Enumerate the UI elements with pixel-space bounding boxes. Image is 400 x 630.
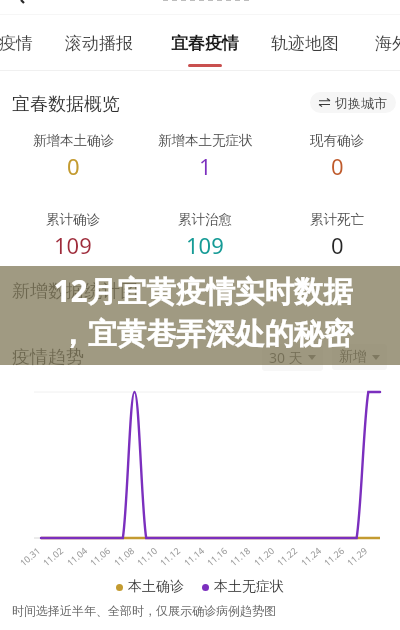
staticText: 11.29 <box>344 544 370 568</box>
staticText: 宜春疫情 <box>171 33 239 54</box>
staticText: 新增数据统计图 <box>12 280 138 303</box>
button[interactable]: 轨迹地图 <box>263 33 347 54</box>
staticText: 切换城市 <box>335 95 387 111</box>
staticText: 0 <box>331 151 344 181</box>
staticText: 109 <box>54 230 92 260</box>
button[interactable]: 现有确诊 <box>277 132 397 181</box>
button[interactable]: 宜春疫情 <box>163 33 247 67</box>
staticText: 11.22 <box>274 544 300 568</box>
button[interactable]: 新增本土无症状 <box>145 132 265 181</box>
staticText: 11.04 <box>64 544 90 568</box>
button[interactable]: 本土确诊 <box>116 578 184 596</box>
staticText: 11.16 <box>204 544 230 568</box>
button[interactable]: 海外 <box>367 33 400 54</box>
staticText: 12月宜黄疫情实时数据 <box>0 270 353 310</box>
staticText: 疫情趋势 <box>12 346 84 369</box>
staticText: 11.12 <box>157 544 183 568</box>
staticText: 1 <box>199 151 212 181</box>
button[interactable]: 本土无症状 <box>202 578 284 596</box>
button[interactable]: 累计确诊 <box>13 211 133 260</box>
staticText: 累计确诊 <box>46 211 100 228</box>
staticText: 0 <box>331 230 344 260</box>
button[interactable]: 新增本土确诊 <box>13 132 133 181</box>
staticText: 0 <box>67 151 80 181</box>
staticText: 10.31 <box>17 544 43 568</box>
staticText: ，宜黄巷弄深处的秘密 <box>0 316 353 353</box>
staticText: 累计死亡 <box>310 211 364 228</box>
staticText: 时间选择近半年、全部时，仅展示确诊病例趋势图 <box>12 603 276 618</box>
staticText: 本土确诊 <box>128 578 184 596</box>
button[interactable]: 新增 <box>332 344 387 370</box>
button[interactable]: 滚动播报 <box>57 33 141 54</box>
staticText: 累计治愈 <box>178 211 232 228</box>
staticText: 疫情 <box>0 33 33 54</box>
staticText: 滚动播报 <box>65 33 133 54</box>
button[interactable]: 疫情 <box>0 33 41 54</box>
button[interactable]: 30 天 <box>262 344 323 371</box>
staticText: 新增本土无症状 <box>158 132 253 149</box>
staticText: 海外 <box>375 33 400 54</box>
staticText: 11.18 <box>227 544 253 568</box>
staticText: 11.14 <box>181 544 207 568</box>
staticText: 本土无症状 <box>214 578 284 596</box>
staticText: 宜春数据概览 <box>12 93 120 116</box>
staticText: 11.10 <box>134 544 160 568</box>
button[interactable]: 累计治愈 <box>145 211 265 260</box>
staticText: 11.02 <box>40 544 66 568</box>
button[interactable]: 累计死亡 <box>277 211 397 260</box>
staticText: 30 天 <box>269 348 303 367</box>
staticText: 11.20 <box>251 544 277 568</box>
staticText: 现有确诊 <box>310 132 364 149</box>
staticText: 新增本土确诊 <box>33 132 114 149</box>
staticText: 轨迹地图 <box>271 33 339 54</box>
staticText: 11.06 <box>87 544 113 568</box>
staticText: 新增 <box>339 348 367 366</box>
staticText: 11.26 <box>321 544 347 568</box>
button[interactable]: 切换城市 <box>310 92 396 113</box>
staticText: 109 <box>186 230 224 260</box>
staticText: 11.08 <box>111 544 137 568</box>
staticText: 11.24 <box>298 544 324 568</box>
